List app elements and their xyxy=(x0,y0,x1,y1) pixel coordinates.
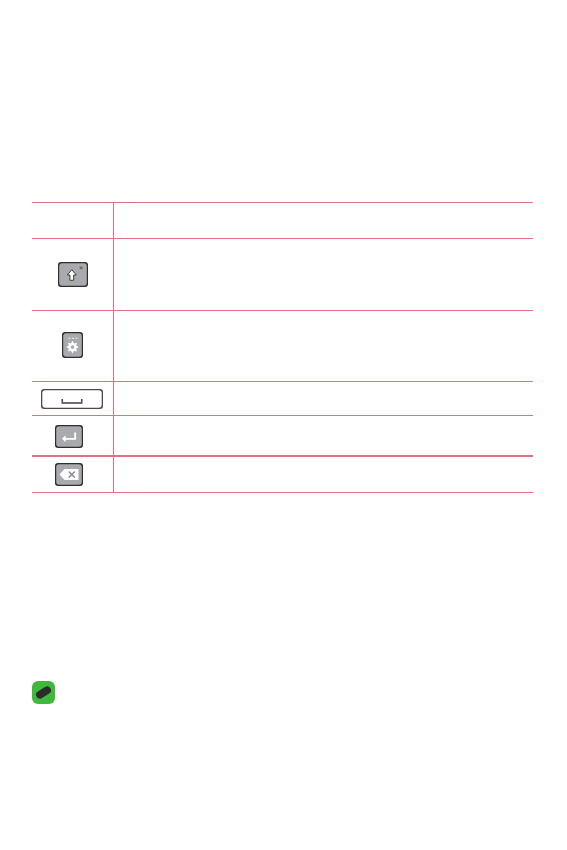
button[interactable]: Space key xyxy=(41,389,103,409)
button[interactable]: Delete key xyxy=(55,463,83,486)
button[interactable]: Settings key xyxy=(62,332,83,358)
other: LG logo xyxy=(32,681,55,704)
button[interactable]: Enter key xyxy=(55,425,83,448)
button[interactable]: Shift key xyxy=(58,262,88,287)
